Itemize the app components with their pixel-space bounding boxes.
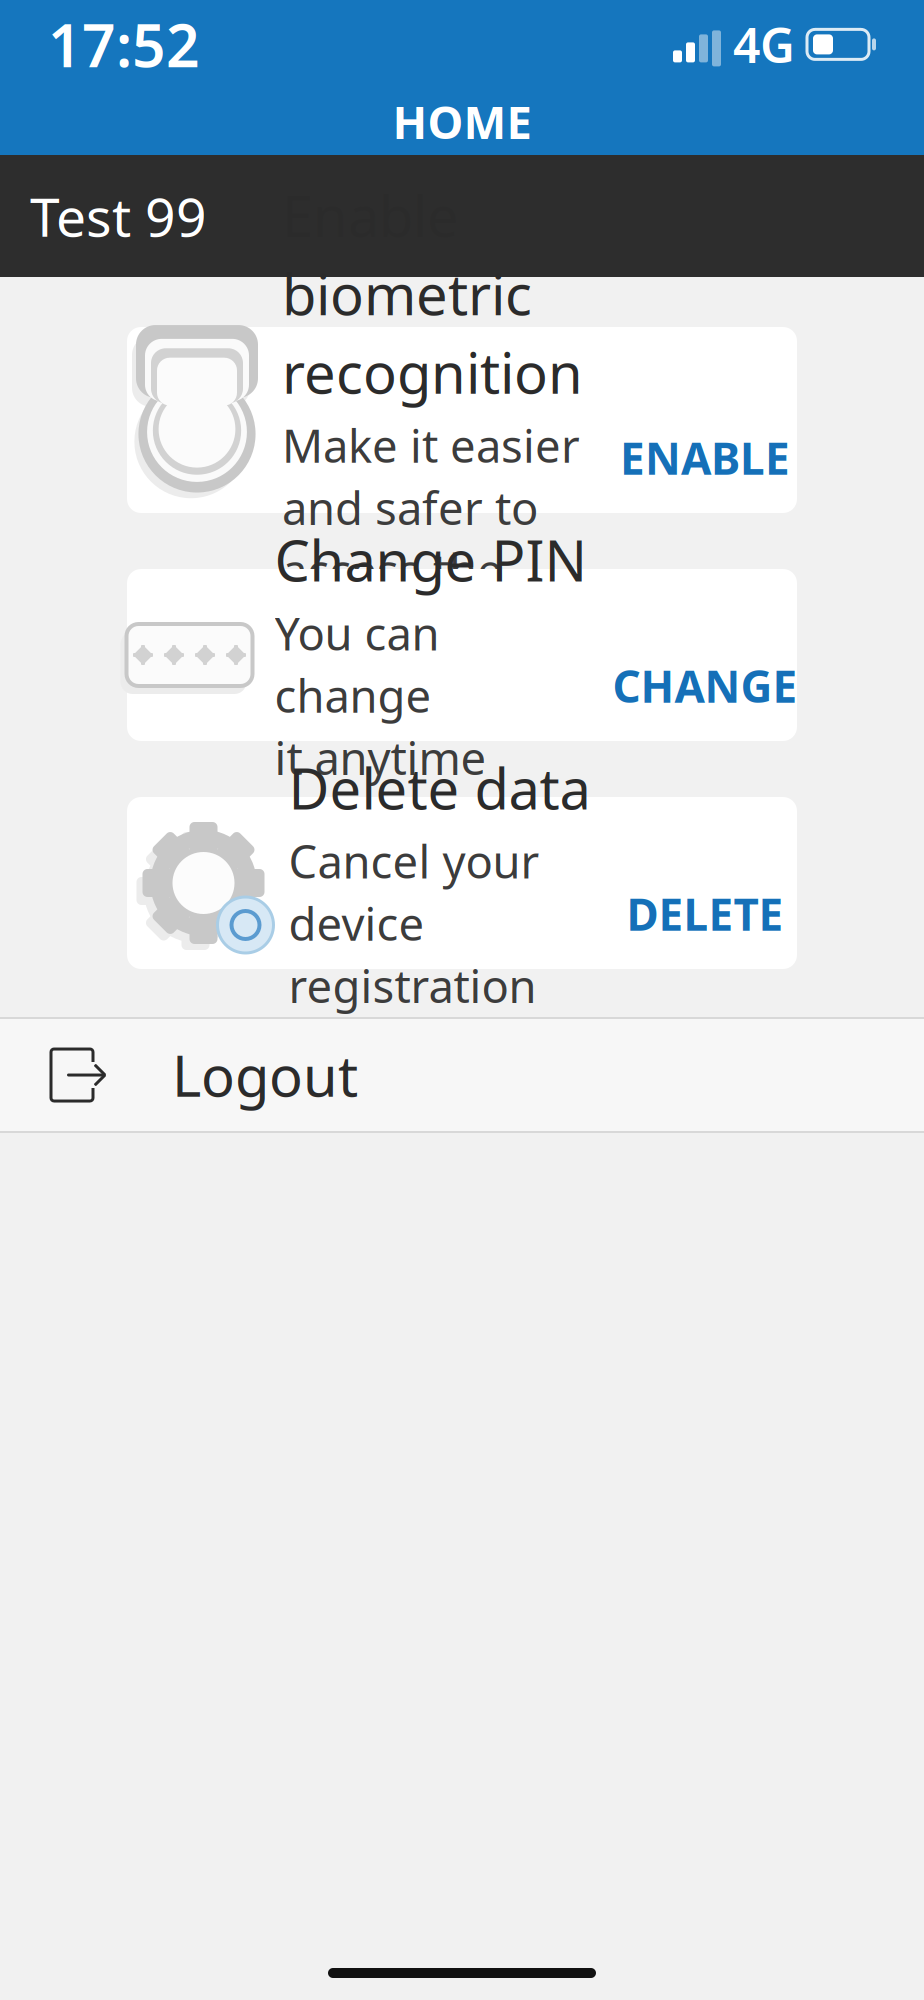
staticText: Enable biometric recognition [282, 178, 583, 409]
staticText: Test 99 [30, 181, 207, 251]
staticText: Change PIN [274, 522, 587, 597]
staticText: Delete data [288, 750, 590, 825]
staticText: Logout [172, 1038, 358, 1112]
staticText: 17:52 [48, 5, 200, 83]
button[interactable]: Delete data [127, 797, 797, 969]
button[interactable]: Enable biometric recognition [127, 327, 797, 513]
button[interactable]: Change PIN [127, 569, 797, 741]
staticText: ENABLE [620, 429, 790, 487]
staticText: 4G [733, 12, 795, 76]
button[interactable]: Logout [0, 1019, 924, 1131]
staticText: You can change it anytime [274, 603, 486, 787]
staticText: HOME [392, 91, 531, 152]
staticText: Cancel your device registration [288, 831, 539, 1015]
staticText: DELETE [626, 885, 783, 943]
staticText: CHANGE [612, 657, 797, 715]
staticText: Make it easier and safer to access the p… [282, 415, 580, 662]
